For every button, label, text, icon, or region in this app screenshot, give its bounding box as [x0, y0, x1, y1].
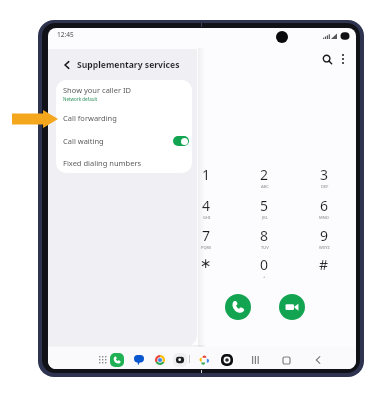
- staticText: ABC: [261, 184, 269, 189]
- staticText: 6: [320, 196, 329, 215]
- staticText: #: [319, 255, 329, 274]
- button[interactable]: 4: [189, 196, 223, 222]
- button[interactable]: Camera: [173, 353, 187, 367]
- staticText: DEF: [321, 184, 329, 189]
- staticText: +: [263, 274, 266, 279]
- button[interactable]: 7: [189, 226, 223, 252]
- staticText: TUV: [261, 245, 269, 250]
- staticText: 1: [202, 165, 211, 184]
- button[interactable]: More options: [334, 50, 352, 68]
- staticText: 4: [202, 196, 211, 215]
- button[interactable]: Call: [225, 294, 251, 320]
- button[interactable]: 5: [247, 196, 281, 222]
- staticText: PQRS: [201, 245, 212, 250]
- staticText: 8: [260, 226, 269, 245]
- button[interactable]: Video call: [279, 294, 305, 320]
- staticText: Network default: [63, 96, 98, 102]
- button[interactable]: Call waiting: [56, 129, 192, 152]
- button[interactable]: Back: [311, 353, 325, 367]
- button[interactable]: 0: [247, 255, 281, 281]
- staticText: Call forwarding: [63, 113, 117, 123]
- button[interactable]: Back: [59, 57, 74, 72]
- staticText: JKL: [262, 215, 268, 220]
- button[interactable]: Fixed dialing numbers: [56, 152, 192, 173]
- button[interactable]: 1: [189, 165, 223, 191]
- button[interactable]: Show your caller ID: [56, 80, 192, 106]
- button[interactable]: Home: [279, 353, 293, 367]
- staticText: Supplementary services: [77, 59, 180, 71]
- button[interactable]: Call forwarding: [56, 106, 192, 129]
- button[interactable]: #: [307, 255, 341, 281]
- staticText: 5: [260, 196, 269, 215]
- button[interactable]: Chrome: [153, 353, 167, 367]
- staticText: 12:45: [57, 30, 74, 39]
- button[interactable]: App: [220, 353, 234, 367]
- button[interactable]: 6: [307, 196, 341, 222]
- button[interactable]: 8: [247, 226, 281, 252]
- staticText: 2: [260, 165, 269, 184]
- staticText: MNO: [319, 215, 329, 220]
- staticText: Show your caller ID: [63, 85, 132, 95]
- staticText: ∗: [200, 255, 212, 271]
- button[interactable]: Search: [318, 50, 336, 68]
- button[interactable]: 9: [307, 226, 341, 252]
- button[interactable]: Phone: [110, 353, 124, 367]
- button[interactable]: Recent apps: [248, 353, 262, 367]
- staticText: 3: [320, 165, 329, 184]
- button[interactable]: 3: [307, 165, 341, 191]
- staticText: Call waiting: [63, 136, 104, 146]
- staticText: WXYZ: [319, 245, 330, 250]
- staticText: Fixed dialing numbers: [63, 158, 142, 168]
- staticText: 9: [320, 226, 329, 245]
- button[interactable]: ∗: [189, 255, 223, 281]
- staticText: GHI: [203, 215, 211, 220]
- staticText: 7: [202, 226, 211, 245]
- button[interactable]: Messages: [132, 353, 146, 367]
- button[interactable]: 2: [247, 165, 281, 191]
- button[interactable]: Photos: [197, 353, 211, 367]
- staticText: 0: [260, 255, 269, 274]
